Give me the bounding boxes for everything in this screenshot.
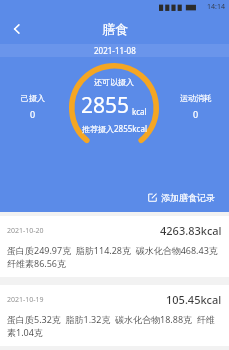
staticText: 2855 [81,91,130,120]
staticText: 蛋白质249.97克 脂肪114.28克 碳水化合物468.43克 纤维素86.… [7,244,222,270]
button[interactable]: 2021-10-19 [0,285,229,346]
staticText: kcal [132,106,147,117]
staticText: 0 [193,108,199,120]
staticText: 运动消耗 [180,93,212,103]
staticText: 0 [30,108,36,120]
staticText: 105.45kcal [166,292,222,307]
button[interactable]: Back [0,14,34,44]
staticText: 推荐摄入2855kcal [82,123,147,134]
staticText: 添加膳食记录 [161,192,215,203]
button[interactable]: 添加膳食记录 [144,189,219,206]
staticText: 2021-10-19 [7,295,44,305]
button[interactable]: 2021-10-20 [0,216,229,277]
staticText: 2021-11-08 [94,45,136,56]
staticText: 膳食 [102,21,128,37]
staticText: 14:14 [207,2,225,12]
staticText: 蛋白质5.32克 脂肪1.32克 碳水化合物18.88克 纤维素1.04克 [7,313,222,339]
staticText: 2021-10-20 [7,226,44,236]
staticText: 己摄入 [21,93,45,103]
staticText: 还可以摄入 [94,77,134,87]
staticText: 4263.83kcal [160,223,222,238]
